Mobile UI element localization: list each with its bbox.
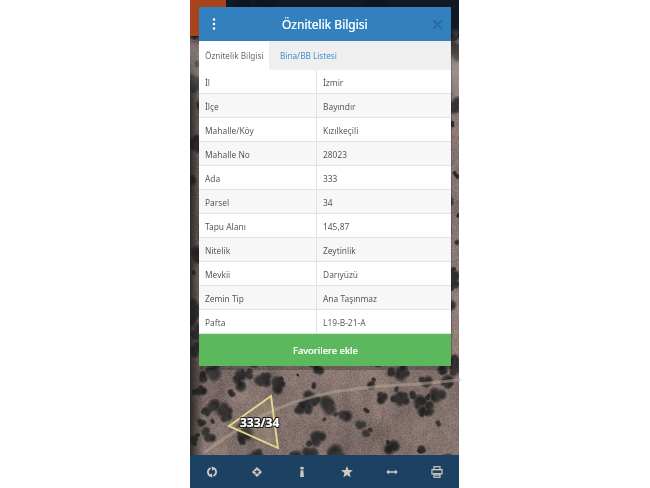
button[interactable]: Info <box>279 455 324 488</box>
staticText: 333/34 <box>239 415 279 431</box>
staticText: 28023 <box>323 149 347 160</box>
staticText: Darıyüzü <box>323 269 359 280</box>
staticText: Zeytinlik <box>323 245 356 256</box>
staticText: 145,87 <box>323 221 350 232</box>
button[interactable]: Öznitelik Bilgisi <box>199 41 269 70</box>
staticText: Öznitelik Bilgisi <box>282 16 368 32</box>
button[interactable]: Close <box>423 10 451 38</box>
button[interactable]: Favorilere ekle <box>199 334 451 366</box>
staticText: 34 <box>323 197 333 208</box>
staticText: Kızılkeçili <box>323 125 359 136</box>
staticText: Mevkii <box>205 269 231 280</box>
button[interactable]: Bina/BB Listesi <box>269 41 347 70</box>
staticText: Bayındır <box>323 101 356 112</box>
staticText: Bina/BB Listesi <box>280 50 337 61</box>
staticText: Parsel <box>205 197 230 208</box>
button[interactable]: Measure <box>369 455 414 488</box>
staticText: Ana Taşınmaz <box>323 293 378 304</box>
staticText: Zemin Tip <box>205 293 244 304</box>
staticText: 333/34 <box>241 413 281 429</box>
staticText: Nitelik <box>205 245 231 256</box>
staticText: Pafta <box>205 317 226 328</box>
button[interactable]: Print <box>414 455 459 488</box>
staticText: L19-B-21-A <box>323 317 366 328</box>
staticText: Mahalle No <box>205 149 250 160</box>
staticText: Ada <box>205 173 221 184</box>
staticText: Mahalle/Köy <box>205 125 254 136</box>
staticText: İl <box>205 77 211 88</box>
staticText: 333/34 <box>239 413 279 429</box>
staticText: 333/34 <box>239 414 279 430</box>
button[interactable]: Favorite <box>324 455 369 488</box>
staticText: İlçe <box>205 101 219 112</box>
staticText: 333/34 <box>240 414 280 430</box>
button[interactable]: More options <box>200 10 228 38</box>
button[interactable]: Refresh <box>190 455 234 488</box>
staticText: 333 <box>323 173 338 184</box>
button[interactable]: My location <box>234 455 279 488</box>
staticText: Öznitelik Bilgisi <box>205 50 264 61</box>
staticText: Tapu Alanı <box>205 221 246 232</box>
staticText: 333/34 <box>240 413 280 429</box>
staticText: 333/34 <box>241 415 281 431</box>
staticText: Favorilere ekle <box>293 344 358 357</box>
staticText: İzmir <box>323 77 344 88</box>
staticText: 333/34 <box>241 414 281 430</box>
staticText: 333/34 <box>240 415 280 431</box>
